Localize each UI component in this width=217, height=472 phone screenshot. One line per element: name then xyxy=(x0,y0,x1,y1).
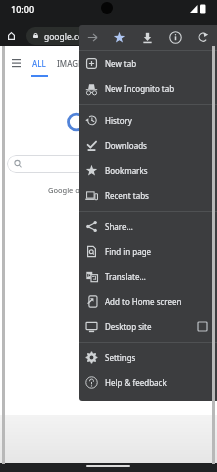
button[interactable]: ALL xyxy=(32,58,46,69)
staticText: Settings xyxy=(105,352,136,363)
staticText: Bookmarks xyxy=(105,165,148,176)
staticText: Add to Home screen xyxy=(105,296,182,307)
button[interactable] xyxy=(7,155,187,173)
staticText: Find in page xyxy=(105,246,152,257)
button[interactable]: Bookmark xyxy=(106,25,133,50)
staticText: Share… xyxy=(105,221,133,232)
button[interactable]: Menu xyxy=(12,59,21,68)
button[interactable]: New tab xyxy=(79,51,217,76)
staticText: Recent tabs xyxy=(105,190,149,201)
button[interactable]: Desktop site xyxy=(79,314,217,339)
button[interactable]: New Incognito tab xyxy=(79,76,217,101)
staticText: Downloads xyxy=(105,140,147,151)
button[interactable]: Settings xyxy=(79,345,217,370)
button[interactable]: Translate… xyxy=(79,264,217,289)
button[interactable]: Download page xyxy=(133,25,161,50)
staticText: google.com xyxy=(44,31,92,43)
staticText: New Incognito tab xyxy=(105,83,175,94)
button[interactable]: Share… xyxy=(79,214,217,239)
button[interactable]: Bookmarks xyxy=(79,158,217,183)
button[interactable]: google.com xyxy=(26,27,156,45)
staticText: Google offered in: xyxy=(48,185,112,195)
staticText: Translate… xyxy=(105,271,146,282)
button[interactable]: History xyxy=(79,108,217,133)
button[interactable]: Home xyxy=(8,32,15,40)
button[interactable]: Add to Home screen xyxy=(79,289,217,314)
staticText: History xyxy=(105,115,132,126)
button[interactable]: Find in page xyxy=(79,239,217,264)
button[interactable]: Forward xyxy=(79,25,106,50)
button[interactable]: IMAGES xyxy=(57,58,87,69)
button[interactable]: Page info xyxy=(161,25,189,50)
button[interactable]: Help & feedback xyxy=(79,370,217,395)
staticText: Help & feedback xyxy=(105,377,167,388)
button[interactable]: Recent tabs xyxy=(79,183,217,208)
staticText: 10:00 xyxy=(11,3,35,15)
button[interactable]: Reload xyxy=(189,25,217,50)
staticText: Desktop site xyxy=(105,321,152,332)
button[interactable]: Downloads xyxy=(79,133,217,158)
staticText: New tab xyxy=(105,58,137,69)
